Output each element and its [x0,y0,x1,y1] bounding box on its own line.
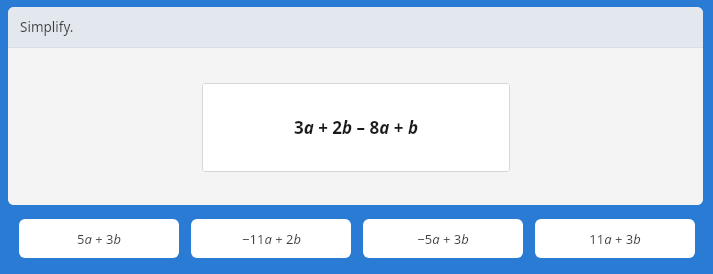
button[interactable]: 5a + 3b [19,219,179,258]
staticText: 5a + 3b [77,230,121,248]
button[interactable]: −11a + 2b [191,219,351,258]
staticText: −5a + 3b [417,230,469,248]
staticText: 3a + 2b – 8a + b [294,116,418,139]
staticText: −11a + 2b [242,230,301,248]
button[interactable]: −5a + 3b [363,219,523,258]
staticText: Simplify. [20,18,74,36]
staticText: 11a + 3b [589,230,641,248]
button[interactable]: 11a + 3b [535,219,695,258]
